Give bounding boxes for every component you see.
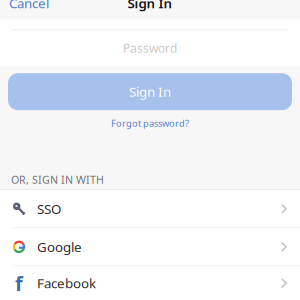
staticText: Password (123, 40, 177, 56)
staticText: Sign In (129, 83, 171, 100)
staticText: Sign In (127, 0, 172, 12)
staticText: Cancel (9, 0, 49, 12)
staticText: Facebook (37, 274, 96, 292)
button[interactable]: Sign In (8, 73, 292, 110)
button[interactable]: Forgot password? (0, 110, 300, 136)
button[interactable]: Google (0, 228, 300, 266)
staticText: f (15, 270, 23, 296)
staticText: SSO (37, 200, 61, 218)
button[interactable]: Cancel (9, 0, 49, 18)
staticText: OR, SIGN IN WITH (11, 172, 104, 187)
staticText: Google (37, 238, 82, 256)
button[interactable]: f (0, 266, 300, 300)
button[interactable]: SSO (0, 190, 300, 228)
staticText: Forgot password? (111, 117, 189, 129)
